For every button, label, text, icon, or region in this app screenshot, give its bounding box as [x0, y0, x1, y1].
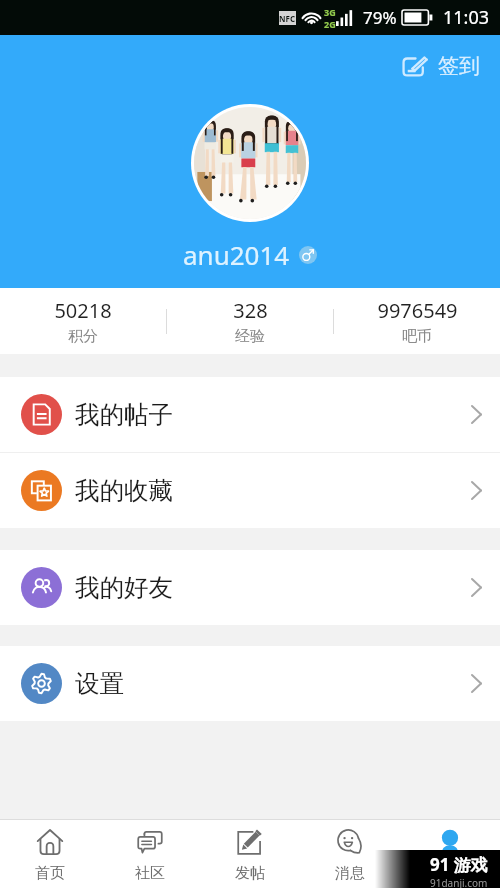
staticText: 3G — [324, 6, 336, 18]
button[interactable]: 发帖 — [200, 820, 300, 888]
button[interactable]: 9976549 — [334, 288, 500, 354]
staticText: 328 — [233, 297, 268, 324]
button[interactable]: 我的 — [400, 820, 500, 888]
staticText: 经验 — [235, 327, 265, 346]
button[interactable]: 消息 — [300, 820, 400, 888]
staticText: 发帖 — [235, 864, 265, 883]
button[interactable]: 设置 — [0, 646, 500, 721]
button[interactable]: 我的帖子 — [0, 377, 500, 452]
button[interactable]: 社区 — [100, 820, 200, 888]
staticText: 签到 — [438, 53, 480, 79]
button[interactable]: 签到 — [398, 49, 484, 83]
staticText: NFC — [279, 13, 296, 24]
button[interactable]: 我的好友 — [0, 550, 500, 625]
staticText: 吧币 — [402, 327, 432, 346]
staticText: 9976549 — [377, 297, 458, 324]
staticText: 91danji.com — [430, 876, 488, 888]
staticText: 2G — [324, 18, 336, 30]
staticText: 79% — [363, 6, 397, 29]
staticText: 我的好友 — [75, 572, 173, 603]
staticText: 91 游戏 — [430, 853, 488, 876]
button[interactable]: 首页 — [0, 820, 100, 888]
staticText: 社区 — [135, 864, 165, 883]
staticText: 我的 — [435, 864, 465, 883]
button[interactable]: 我的收藏 — [0, 453, 500, 528]
staticText: 首页 — [35, 864, 65, 883]
button[interactable]: Avatar — [194, 107, 306, 219]
button[interactable]: 50218 — [0, 288, 166, 354]
staticText: anu2014 — [183, 237, 290, 272]
staticText: 我的收藏 — [75, 475, 173, 506]
staticText: 消息 — [335, 864, 365, 883]
staticText: 11:03 — [443, 5, 490, 30]
staticText: 50218 — [54, 297, 112, 324]
button[interactable]: 328 — [167, 288, 333, 354]
staticText: 我的帖子 — [75, 399, 173, 430]
staticText: 积分 — [68, 327, 98, 346]
staticText: 设置 — [75, 668, 124, 699]
